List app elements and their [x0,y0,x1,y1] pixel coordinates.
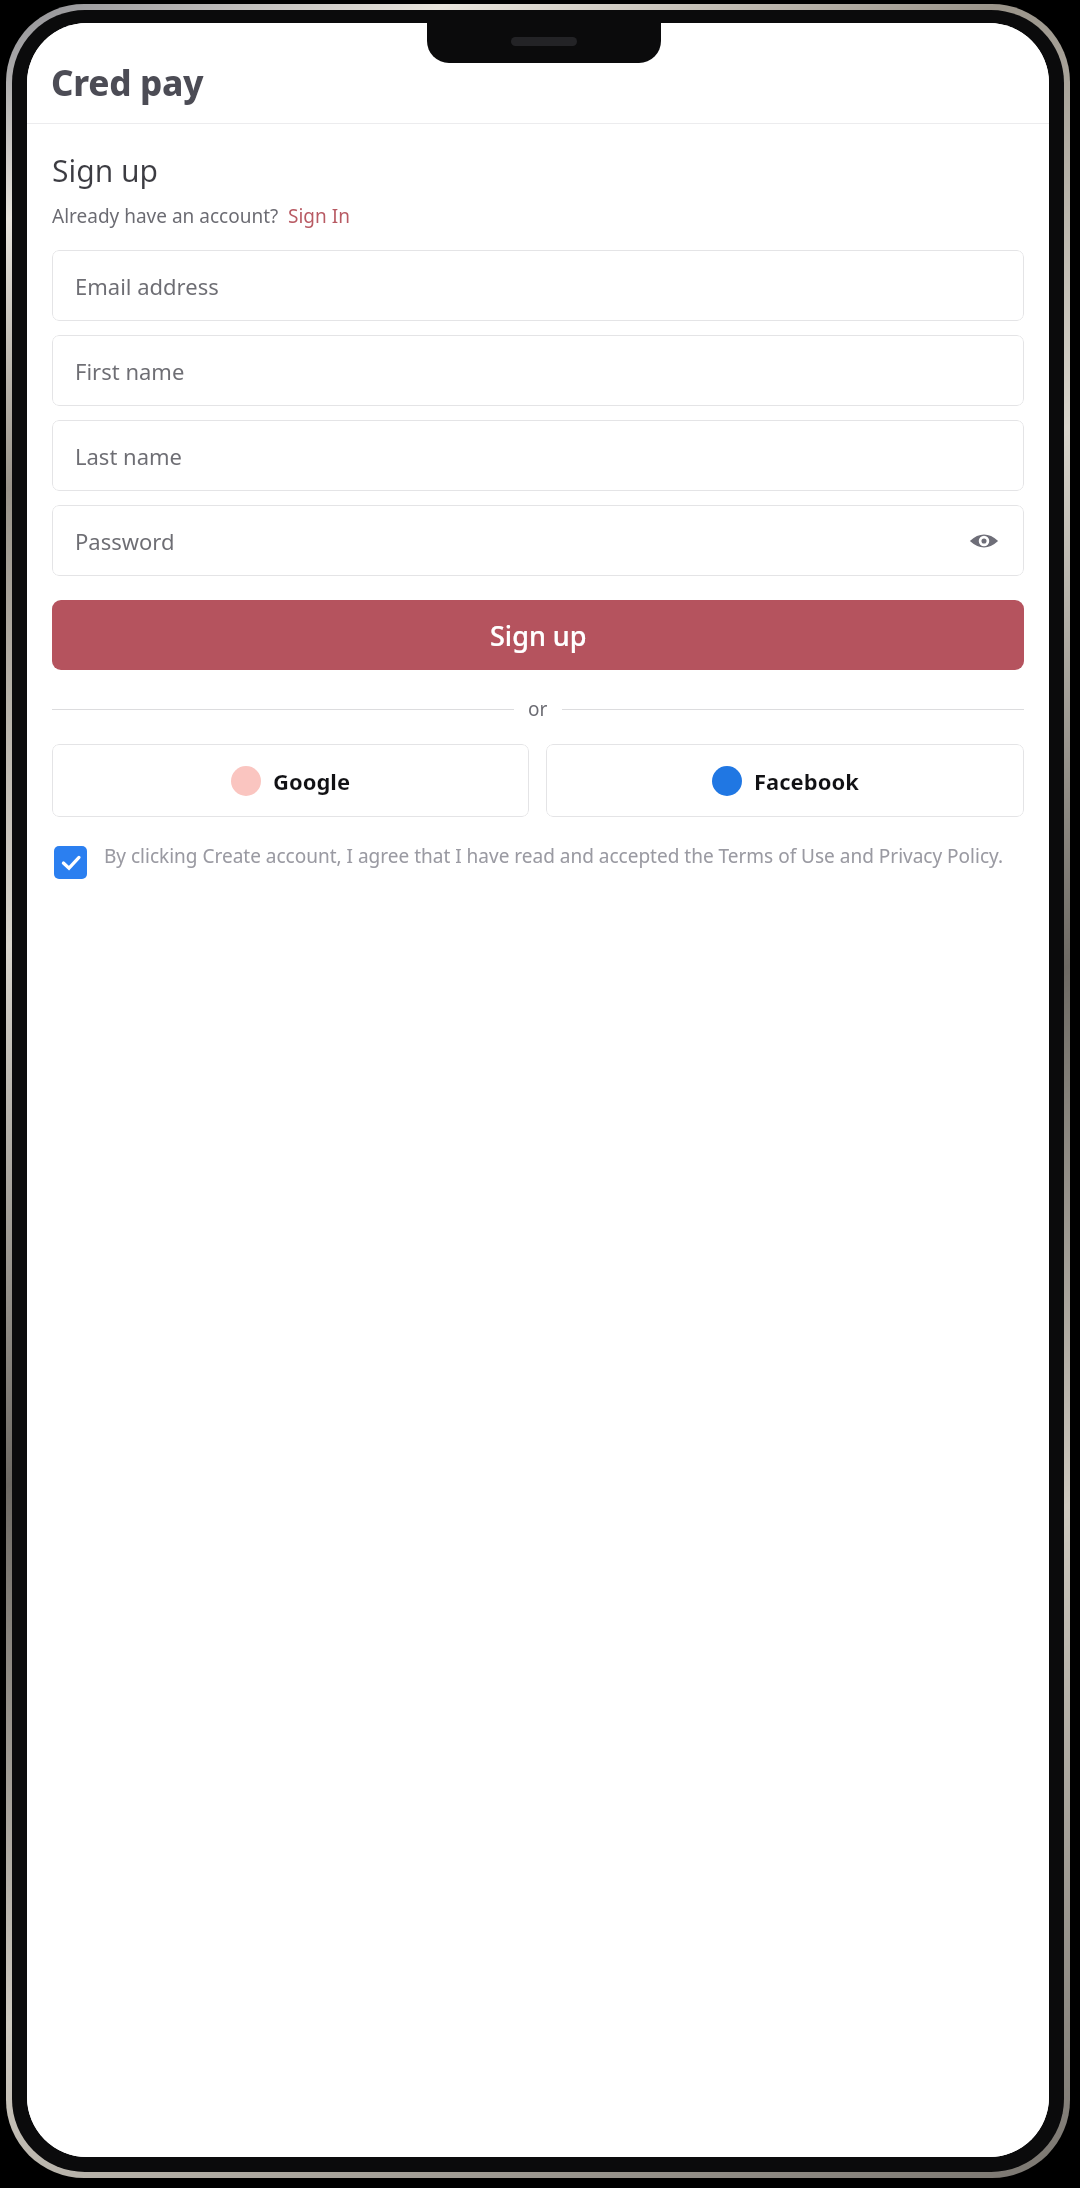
button[interactable]: Accept terms checkbox [54,843,1027,876]
staticText: Sign up [52,150,158,191]
staticText: Last name [75,441,182,471]
staticText: First name [75,356,185,386]
button[interactable]: Sign up [52,600,1024,670]
staticText: or [528,696,548,722]
staticText: By clicking Create account, I agree that… [104,843,1004,869]
button[interactable]: Show password [962,519,1006,563]
button[interactable]: Google [52,744,529,817]
staticText: Password [75,526,175,556]
staticText: Google [273,766,351,796]
staticText: Already have an account? [52,203,279,229]
button[interactable]: Email address [52,250,1024,321]
button[interactable]: Last name [52,420,1024,491]
button[interactable]: First name [52,335,1024,406]
other: Accept terms checkbox [54,846,87,879]
staticText: Facebook [754,766,859,796]
staticText: Sign up [490,617,587,654]
staticText: Email address [75,271,219,301]
staticText: Cred pay [51,59,204,107]
button[interactable]: Facebook [546,744,1024,817]
button[interactable]: Password [52,505,1024,576]
staticText: Sign In [288,203,350,229]
button[interactable]: Sign In [288,203,350,229]
